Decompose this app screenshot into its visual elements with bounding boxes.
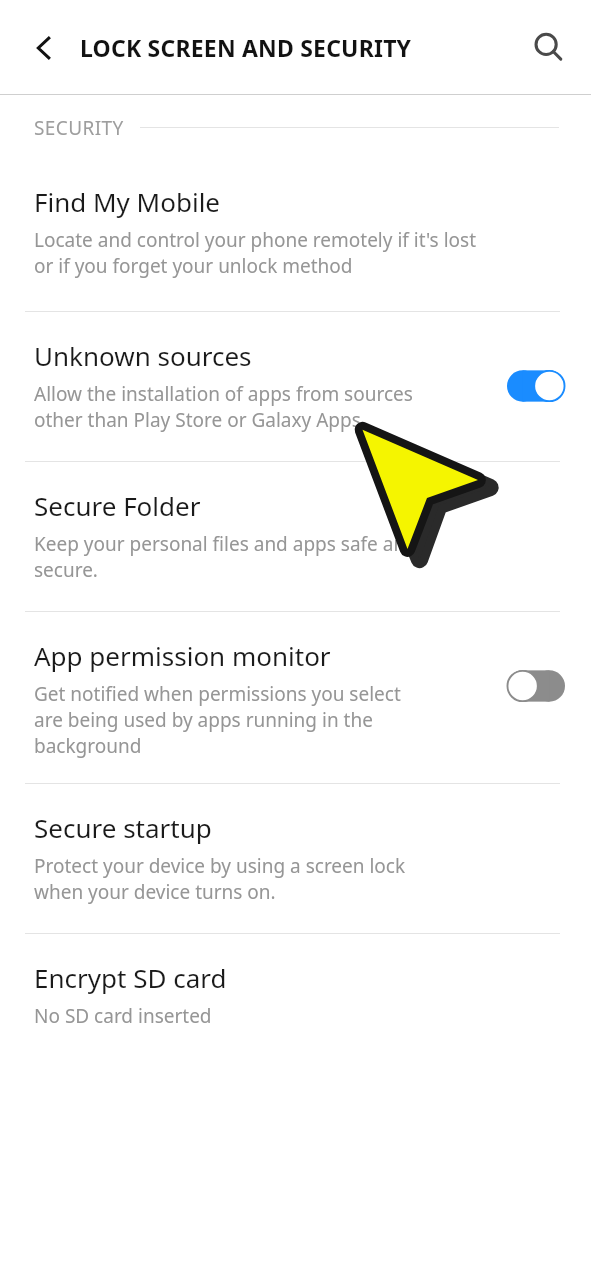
staticText: Keep your personal files and apps safe a… [34,531,417,583]
button[interactable]: Encrypt SD card [0,934,591,1057]
staticText: Locate and control your phone remotely i… [34,227,476,279]
staticText: No SD card inserted [34,1003,212,1029]
button[interactable]: Unknown sources [0,312,591,461]
staticText: App permission monitor [34,638,331,673]
button[interactable]: Find My Mobile [0,160,591,311]
staticText: Get notified when permissions you select… [34,681,401,759]
staticText: Secure Folder [34,488,201,523]
staticText: Unknown sources [34,338,252,373]
button[interactable]: Secure Folder [0,462,591,611]
button[interactable]: Search [519,18,579,78]
button[interactable]: Unknown sources on [503,364,569,408]
button[interactable]: Secure startup [0,784,591,933]
button[interactable]: Back [16,20,72,76]
staticText: Protect your device by using a screen lo… [34,853,406,905]
staticText: Find My Mobile [34,184,221,219]
staticText: SECURITY [34,115,124,141]
staticText: Encrypt SD card [34,960,227,995]
staticText: Secure startup [34,810,212,845]
button[interactable]: App permission monitor off [503,664,569,708]
staticText: LOCK SCREEN AND SECURITY [80,32,412,63]
button[interactable]: App permission monitor [0,612,591,783]
staticText: Allow the installation of apps from sour… [34,381,413,433]
